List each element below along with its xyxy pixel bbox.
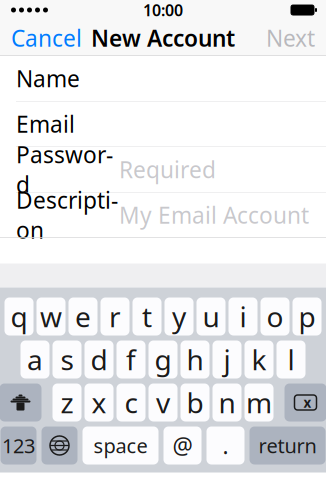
button[interactable]: return [249,426,325,464]
button[interactable]: g [148,340,177,378]
button[interactable]: t [132,297,161,335]
button[interactable]: Password [0,147,326,192]
staticText: a [27,341,43,378]
button[interactable]: Shift [0,383,41,421]
button[interactable]: o [260,297,289,335]
button[interactable]: b [180,383,209,421]
button[interactable]: v [148,383,177,421]
staticText: Description [16,185,118,245]
button[interactable]: y [164,297,193,335]
staticText: Email [16,109,75,139]
button[interactable]: . [206,426,244,464]
staticText: b [186,384,203,421]
staticText: o [266,298,283,335]
button[interactable]: n [212,383,241,421]
staticText: j [223,341,230,378]
staticText: s [60,341,73,378]
button[interactable]: c [116,383,145,421]
staticText: Name [16,63,80,93]
staticText: My Email Account [119,200,309,230]
staticText: 123 [2,432,35,459]
button[interactable]: p [292,297,321,335]
button[interactable]: Next [255,20,326,56]
button[interactable]: Next keyboard [41,426,77,464]
staticText: x [303,394,311,411]
button[interactable]: Email [0,101,326,147]
staticText: x [91,384,106,421]
staticText: space [93,432,147,459]
staticText: @ [172,430,192,460]
button[interactable]: j [212,340,241,378]
button[interactable]: 123 [0,426,36,464]
button[interactable]: u [196,297,225,335]
staticText: p [298,298,315,335]
button[interactable]: q [4,297,33,335]
staticText: 10:00 [143,0,183,21]
staticText: l [287,341,294,378]
button[interactable]: space [82,426,158,464]
button[interactable]: k [244,340,273,378]
button[interactable]: Delete [284,383,326,421]
button[interactable]: l [276,340,305,378]
button[interactable]: e [68,297,97,335]
button[interactable]: z [52,383,81,421]
button[interactable]: r [100,297,129,335]
staticText: e [75,298,91,335]
staticText: Required [119,154,216,184]
staticText: q [10,298,27,335]
staticText: d [90,341,107,378]
staticText: h [186,341,203,378]
staticText: w [40,298,62,335]
staticText: n [218,384,235,421]
button[interactable]: Name [0,56,326,101]
staticText: Next [266,23,315,53]
staticText: z [60,384,73,421]
button[interactable]: h [180,340,209,378]
button[interactable]: Description [0,192,326,238]
staticText: . [222,430,228,460]
staticText: v [156,384,170,421]
staticText: New Account [91,23,235,53]
staticText: r [109,298,121,335]
button[interactable]: x [84,383,113,421]
staticText: Password [16,139,113,200]
staticText: i [239,298,246,335]
button[interactable]: Cancel [0,20,93,56]
button[interactable]: i [228,297,257,335]
staticText: t [142,298,152,335]
staticText: u [202,298,219,335]
button[interactable]: s [52,340,81,378]
button[interactable]: w [36,297,65,335]
staticText: f [126,341,136,378]
staticText: g [154,341,171,378]
staticText: Cancel [11,23,82,53]
button[interactable]: a [20,340,49,378]
staticText: m [246,384,272,421]
button[interactable]: f [116,340,145,378]
staticText: k [251,341,266,378]
staticText: y [172,298,186,335]
staticText: c [124,384,137,421]
button[interactable]: @ [163,426,201,464]
button[interactable]: d [84,340,113,378]
staticText: return [258,432,316,459]
button[interactable]: m [244,383,273,421]
